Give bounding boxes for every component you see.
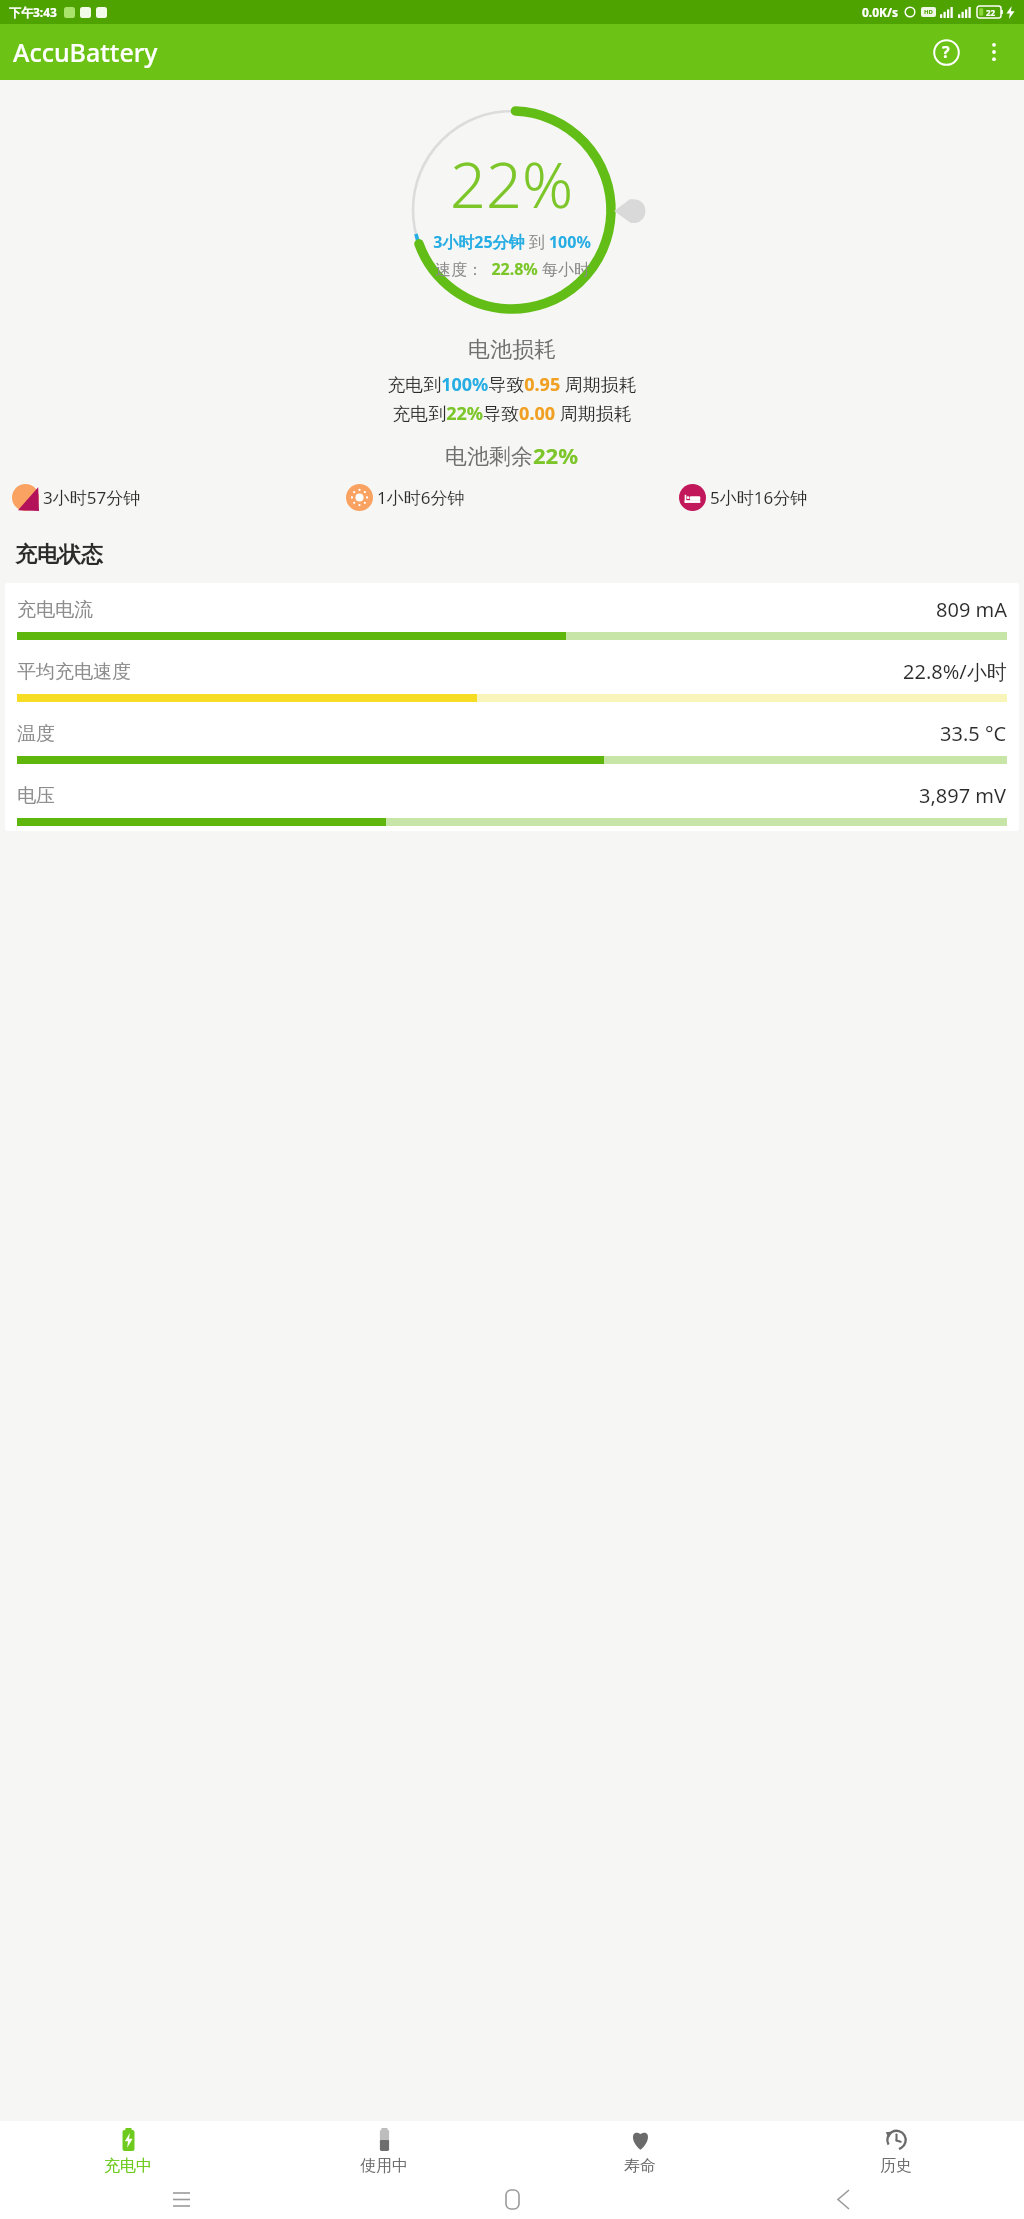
button[interactable]: More options [970,28,1018,76]
staticText: 平均充电速度 [17,660,131,684]
staticText: 电压 [17,784,55,808]
button[interactable]: 1小时6分钟 [346,484,679,511]
button[interactable]: 充电电流 [17,583,1007,645]
staticText: 充电状态 [15,541,103,569]
button[interactable]: 5小时16分钟 [679,484,1012,511]
staticText: 充电中 [104,2156,152,2176]
staticText: 809 mA [936,596,1007,623]
staticText: 下午3:43 [9,4,57,20]
staticText: HD [924,8,933,16]
staticText: 电池损耗 [468,336,556,364]
button[interactable]: 历史 [768,2121,1024,2179]
button[interactable]: 3小时57分钟 [12,484,346,511]
staticText: 充电到22%导致0.00 周期损耗 [392,401,632,426]
button[interactable]: 充电中 [0,2121,256,2179]
staticText: 温度 [17,722,55,746]
button[interactable]: 温度 [17,707,1007,769]
staticText: 0.0K/s [862,4,899,20]
staticText: 1小时6分钟 [377,486,465,509]
staticText: 充电电流 [17,598,93,622]
staticText: 历史 [880,2156,912,2176]
button[interactable]: Recent apps [164,2182,198,2216]
staticText: 寿命 [624,2156,656,2176]
staticText: 使用中 [360,2156,408,2176]
button[interactable]: Back [826,2182,860,2216]
button[interactable]: 寿命 [512,2121,768,2179]
staticText: 22 [986,7,996,18]
staticText: 充电到100%导致0.95 周期损耗 [387,372,637,397]
staticText: 5小时16分钟 [710,486,808,509]
staticText: 速度： 22.8% 每小时 [435,258,590,280]
staticText: 22% [450,141,574,227]
staticText: AccuBattery [13,35,158,69]
button[interactable]: 使用中 [256,2121,512,2179]
staticText: 电池剩余22% [445,440,579,470]
staticText: 22.8%/小时 [903,658,1007,685]
staticText: 3小时25分钟 到 100% [433,231,591,253]
staticText: ? [942,41,950,63]
staticText: 3,897 mV [919,782,1007,809]
button[interactable]: 平均充电速度 [17,645,1007,707]
staticText: 33.5 °C [940,720,1007,747]
button[interactable]: Help [922,28,970,76]
button[interactable]: 电压 [17,769,1007,831]
button[interactable]: Home [495,2182,529,2216]
staticText: 3小时57分钟 [43,486,141,509]
